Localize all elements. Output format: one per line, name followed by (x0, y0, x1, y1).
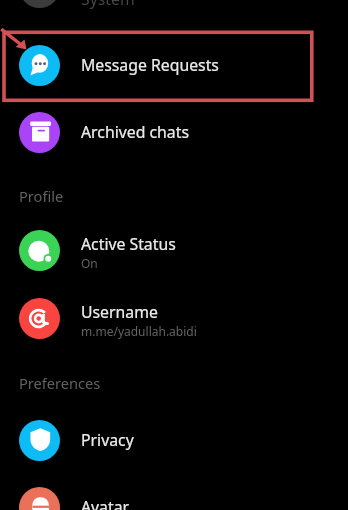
staticText: Profile (19, 186, 64, 206)
staticText: m.me/yadullah.abidi (81, 323, 197, 339)
button[interactable]: Active Status (0, 217, 348, 283)
staticText: Preferences (19, 373, 101, 393)
staticText: On (81, 255, 98, 271)
button[interactable]: Privacy (0, 407, 348, 473)
staticText: Avatar (81, 496, 130, 510)
staticText: Privacy (81, 429, 134, 451)
staticText: Archived chats (81, 121, 189, 143)
button[interactable]: Username (0, 285, 348, 351)
staticText: Active Status (81, 233, 176, 255)
button[interactable]: System (0, 0, 348, 20)
staticText: Username (81, 301, 158, 323)
button[interactable]: Archived chats (0, 99, 348, 165)
staticText: Message Requests (81, 54, 219, 76)
staticText: System (81, 0, 135, 10)
button[interactable]: Avatar (0, 474, 348, 510)
button[interactable]: Message Requests (0, 32, 348, 98)
